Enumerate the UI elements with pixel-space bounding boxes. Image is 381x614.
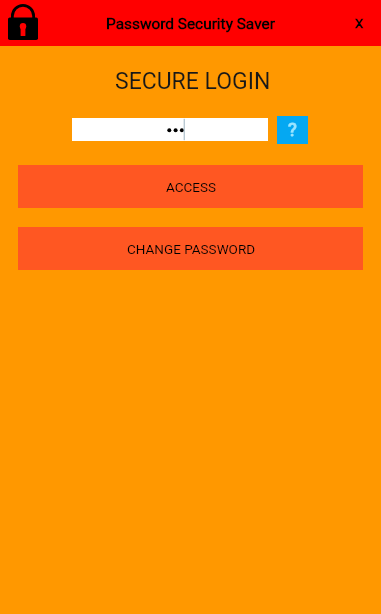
staticText: X <box>355 16 364 32</box>
button[interactable]: Password <box>72 118 268 141</box>
staticText: ? <box>288 119 297 141</box>
button[interactable]: ACCESS <box>18 165 363 208</box>
button[interactable]: Help <box>277 116 308 144</box>
staticText: SECURE LOGIN <box>115 68 271 95</box>
button[interactable]: Close <box>337 0 381 46</box>
staticText: CHANGE PASSWORD <box>127 241 256 257</box>
button[interactable]: CHANGE PASSWORD <box>18 227 363 270</box>
staticText: Password Security Saver <box>106 15 275 33</box>
staticText: ACCESS <box>166 179 217 195</box>
other: Password Security Saver <box>8 4 38 40</box>
